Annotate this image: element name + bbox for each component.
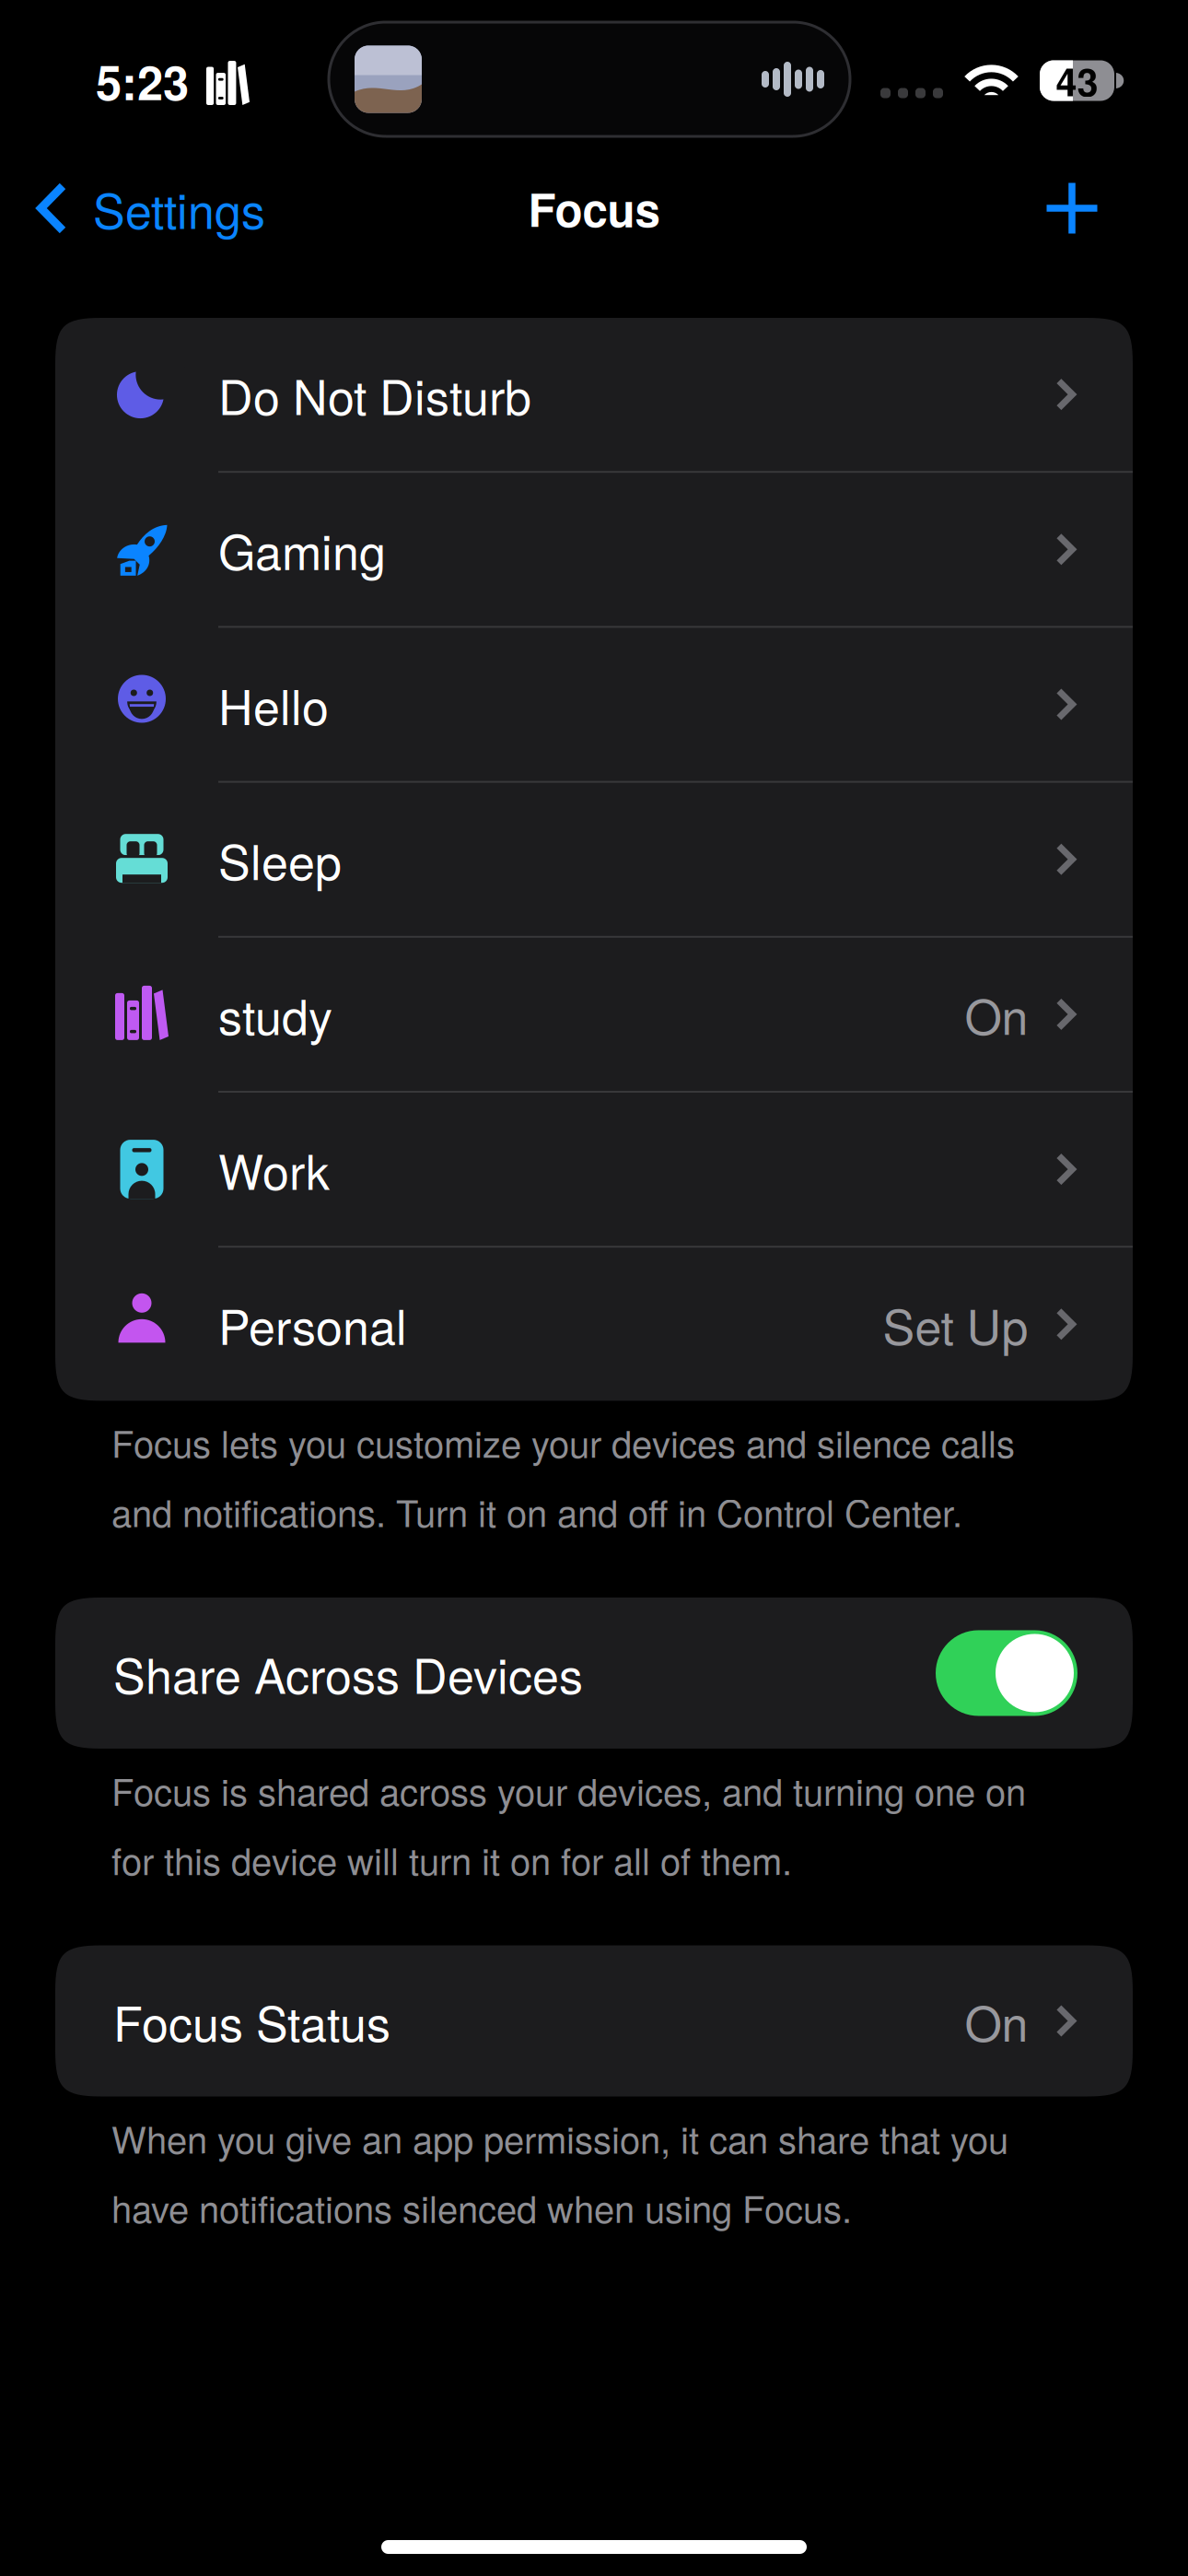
button[interactable]: Settings — [0, 149, 265, 267]
staticText: Personal — [218, 1290, 407, 1359]
staticText: study — [218, 980, 332, 1049]
staticText: 43 — [1056, 53, 1098, 108]
staticText: Gaming — [218, 515, 386, 584]
button[interactable]: Do Not Disturb — [55, 318, 1133, 471]
button[interactable]: Add Focus — [1013, 149, 1131, 267]
staticText: Focus lets you customize your devices an… — [111, 1416, 1015, 1538]
staticText: Work — [218, 1135, 330, 1204]
staticText: On — [965, 980, 1028, 1049]
staticText: 5:23 — [96, 48, 189, 115]
button[interactable]: Hello — [55, 628, 1133, 781]
button[interactable]: Share Across Devices — [55, 1598, 1133, 1749]
button[interactable]: Gaming — [55, 473, 1133, 626]
staticText: When you give an app permission, it can … — [111, 2111, 1008, 2233]
staticText: Focus is shared across your devices, and… — [111, 1763, 1026, 1886]
staticText: Sleep — [218, 825, 342, 894]
button[interactable]: Sleep — [55, 783, 1133, 936]
staticText: Focus — [528, 176, 660, 241]
staticText: Focus Status — [113, 1987, 390, 2055]
staticText: Hello — [218, 670, 329, 739]
staticText: Settings — [93, 174, 265, 243]
staticText: On — [965, 1987, 1028, 2055]
button[interactable]: Personal — [55, 1248, 1133, 1401]
button[interactable]: study — [55, 938, 1133, 1091]
staticText: Share Across Devices — [113, 1639, 583, 1707]
button[interactable]: Focus Status — [55, 1945, 1133, 2096]
button[interactable]: Work — [55, 1093, 1133, 1246]
staticText: Set Up — [883, 1290, 1028, 1359]
staticText: Do Not Disturb — [218, 360, 531, 429]
